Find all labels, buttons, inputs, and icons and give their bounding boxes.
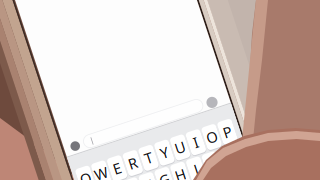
staticText: E bbox=[113, 158, 121, 178]
staticText: G bbox=[159, 170, 170, 180]
staticText: J bbox=[194, 160, 198, 179]
staticText: Y bbox=[160, 143, 168, 162]
staticText: K bbox=[207, 155, 216, 174]
staticText: T bbox=[145, 148, 153, 168]
staticText: L bbox=[224, 149, 232, 169]
staticText: U bbox=[175, 138, 186, 157]
staticText: F bbox=[145, 175, 153, 180]
staticText: P bbox=[223, 122, 232, 142]
staticText: I bbox=[193, 132, 198, 152]
staticText: H bbox=[175, 165, 186, 180]
staticText: Q bbox=[80, 169, 91, 180]
staticText: W bbox=[94, 164, 108, 180]
staticText: O bbox=[206, 127, 217, 147]
staticText: R bbox=[128, 153, 137, 173]
